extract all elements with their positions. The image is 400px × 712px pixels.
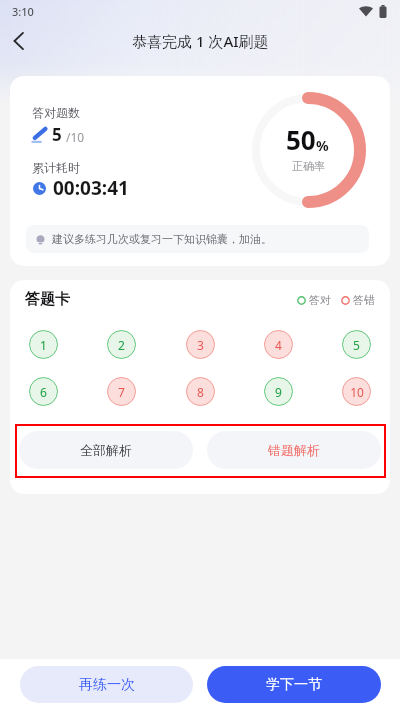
button[interactable]: 4 [264,330,293,359]
staticText: 7 [118,384,125,400]
staticText: 3:10 [12,4,34,19]
staticText: 累计耗时 [32,160,80,175]
staticText: 00:03:41 [53,175,129,201]
staticText: 9 [275,384,282,400]
button[interactable]: Back [0,22,38,60]
staticText: 答对题数 [32,105,80,120]
button[interactable]: 学下一节 [207,666,381,703]
button[interactable]: 9 [264,377,293,406]
button[interactable]: 再练一次 [20,666,193,703]
button[interactable]: 2 [107,330,136,359]
button[interactable]: 全部解析 [19,431,193,469]
button[interactable]: 8 [186,377,215,406]
button[interactable]: 错题解析 [207,431,381,469]
staticText: 5 [52,123,62,146]
button[interactable]: 6 [29,377,58,406]
staticText: 2 [118,337,125,353]
staticText: % [316,136,329,155]
staticText: 50 [286,122,316,157]
staticText: 正确率 [292,159,325,173]
staticText: 8 [197,384,204,400]
staticText: /10 [66,129,85,145]
button[interactable]: 10 [342,377,371,406]
staticText: 10 [350,384,364,400]
staticText: 再练一次 [79,676,135,694]
staticText: 答题卡 [25,290,70,309]
button[interactable]: 7 [107,377,136,406]
button[interactable]: 1 [29,330,58,359]
staticText: 建议多练习几次或复习一下知识锦囊，加油。 [52,232,272,246]
staticText: 4 [275,337,282,353]
staticText: 6 [40,384,47,400]
staticText: 答对 [309,293,331,307]
staticText: 5 [353,337,360,353]
button[interactable]: 5 [342,330,371,359]
staticText: 1 [40,337,47,353]
staticText: 学下一节 [266,676,322,694]
staticText: 全部解析 [80,442,132,458]
button[interactable]: 3 [186,330,215,359]
staticText: 错题解析 [268,442,320,458]
staticText: 3 [197,337,204,353]
staticText: 恭喜完成 1 次AI刷题 [132,31,269,51]
staticText: 答错 [353,293,375,307]
